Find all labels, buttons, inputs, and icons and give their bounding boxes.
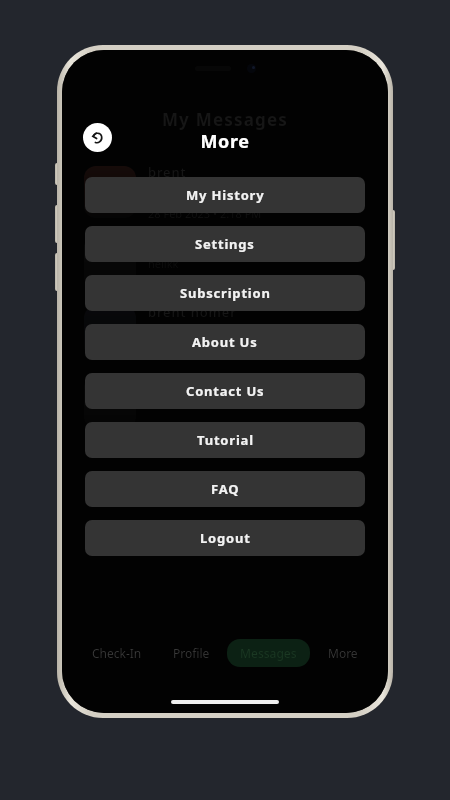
button[interactable]: About Us <box>85 324 365 360</box>
staticText: hellkk <box>148 256 179 271</box>
button[interactable]: Settings <box>85 226 365 262</box>
staticText: Check-In <box>92 645 142 661</box>
staticText: brent <box>148 163 187 181</box>
button[interactable]: Check-In <box>79 639 155 667</box>
button[interactable]: FAQ <box>85 471 365 507</box>
staticText: My History <box>186 186 265 204</box>
staticText: now it sicks <box>148 326 207 341</box>
button[interactable]: Back <box>83 123 112 152</box>
button[interactable]: More <box>315 639 371 667</box>
staticText: Subscription <box>180 284 271 302</box>
button[interactable]: Logout <box>85 520 365 556</box>
staticText: More <box>328 645 358 661</box>
button[interactable]: Subscription <box>85 275 365 311</box>
staticText: Logout <box>200 529 251 547</box>
staticText: brent homer <box>148 303 237 321</box>
button[interactable]: Messages <box>227 639 310 667</box>
staticText: 21 Feb 2023 • 11:42 AM <box>148 346 268 361</box>
staticText: Tutorial <box>197 431 254 449</box>
staticText: 28 Feb 2023 • 2:18 PM <box>148 206 262 221</box>
staticText: FAQ <box>211 480 240 498</box>
staticText: My Messages <box>62 108 388 131</box>
staticText: Marcus Behrendoff <box>148 233 283 251</box>
staticText: Settings <box>195 235 255 253</box>
staticText: Messages <box>240 645 297 661</box>
staticText: More <box>62 129 388 154</box>
staticText: Contact Us <box>186 382 265 400</box>
button[interactable]: Profile <box>160 639 223 667</box>
staticText: About Us <box>192 333 258 351</box>
button[interactable]: Tutorial <box>85 422 365 458</box>
button[interactable]: My History <box>85 177 365 213</box>
staticText: 28 Feb 2023 • 10:26 AM <box>148 276 268 291</box>
staticText: Profile <box>173 645 210 661</box>
button[interactable]: Contact Us <box>85 373 365 409</box>
